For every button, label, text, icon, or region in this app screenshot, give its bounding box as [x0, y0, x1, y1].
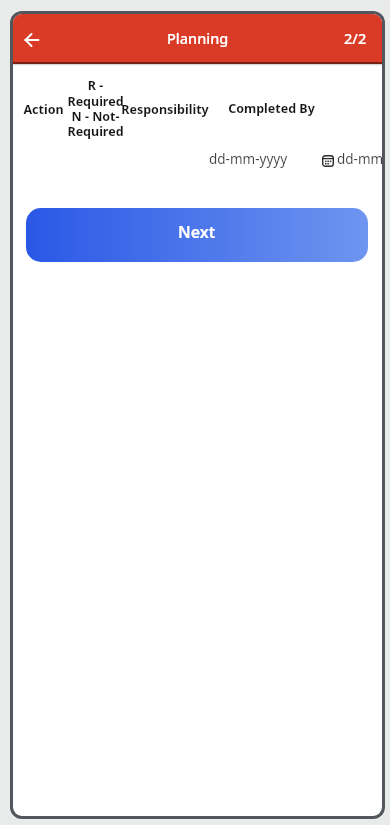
button[interactable]: dd-mm-yyyy — [193, 149, 303, 169]
staticText: 2/2 — [344, 28, 367, 48]
staticText: dd-mm-yyyy — [337, 150, 382, 168]
staticText: Next — [178, 221, 216, 243]
staticText: Completed By — [228, 100, 315, 117]
button[interactable]: Next — [26, 208, 368, 262]
button[interactable] — [20, 28, 44, 52]
button[interactable]: dd-mm-yyyy — [337, 149, 382, 169]
staticText: dd-mm-yyyy — [209, 150, 288, 168]
staticText: Responsibility — [121, 101, 209, 118]
staticText: Action — [23, 101, 64, 118]
staticText: Planning — [167, 28, 229, 48]
staticText: R - Required N - Not- Required — [67, 77, 124, 140]
